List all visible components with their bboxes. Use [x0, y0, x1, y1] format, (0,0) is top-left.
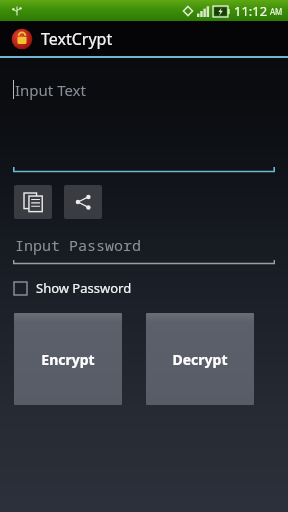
button[interactable]: Encrypt — [14, 313, 122, 405]
button[interactable]: Decrypt — [146, 313, 254, 405]
button[interactable]: Input Text — [13, 73, 275, 173]
staticText: Encrypt — [41, 350, 95, 369]
staticText: Input Text — [15, 80, 86, 100]
staticText: Input Password — [15, 235, 142, 255]
button[interactable]: Copy — [14, 185, 52, 219]
staticText: Decrypt — [172, 350, 228, 369]
staticText: Show Password — [36, 279, 132, 297]
button[interactable]: Share — [64, 185, 102, 219]
staticText: 11:12 — [234, 2, 268, 20]
staticText: AM — [270, 6, 283, 17]
button[interactable]: Input Password — [13, 233, 275, 265]
staticText: TextCrypt — [41, 28, 113, 50]
button[interactable]: Show Password — [14, 277, 132, 299]
